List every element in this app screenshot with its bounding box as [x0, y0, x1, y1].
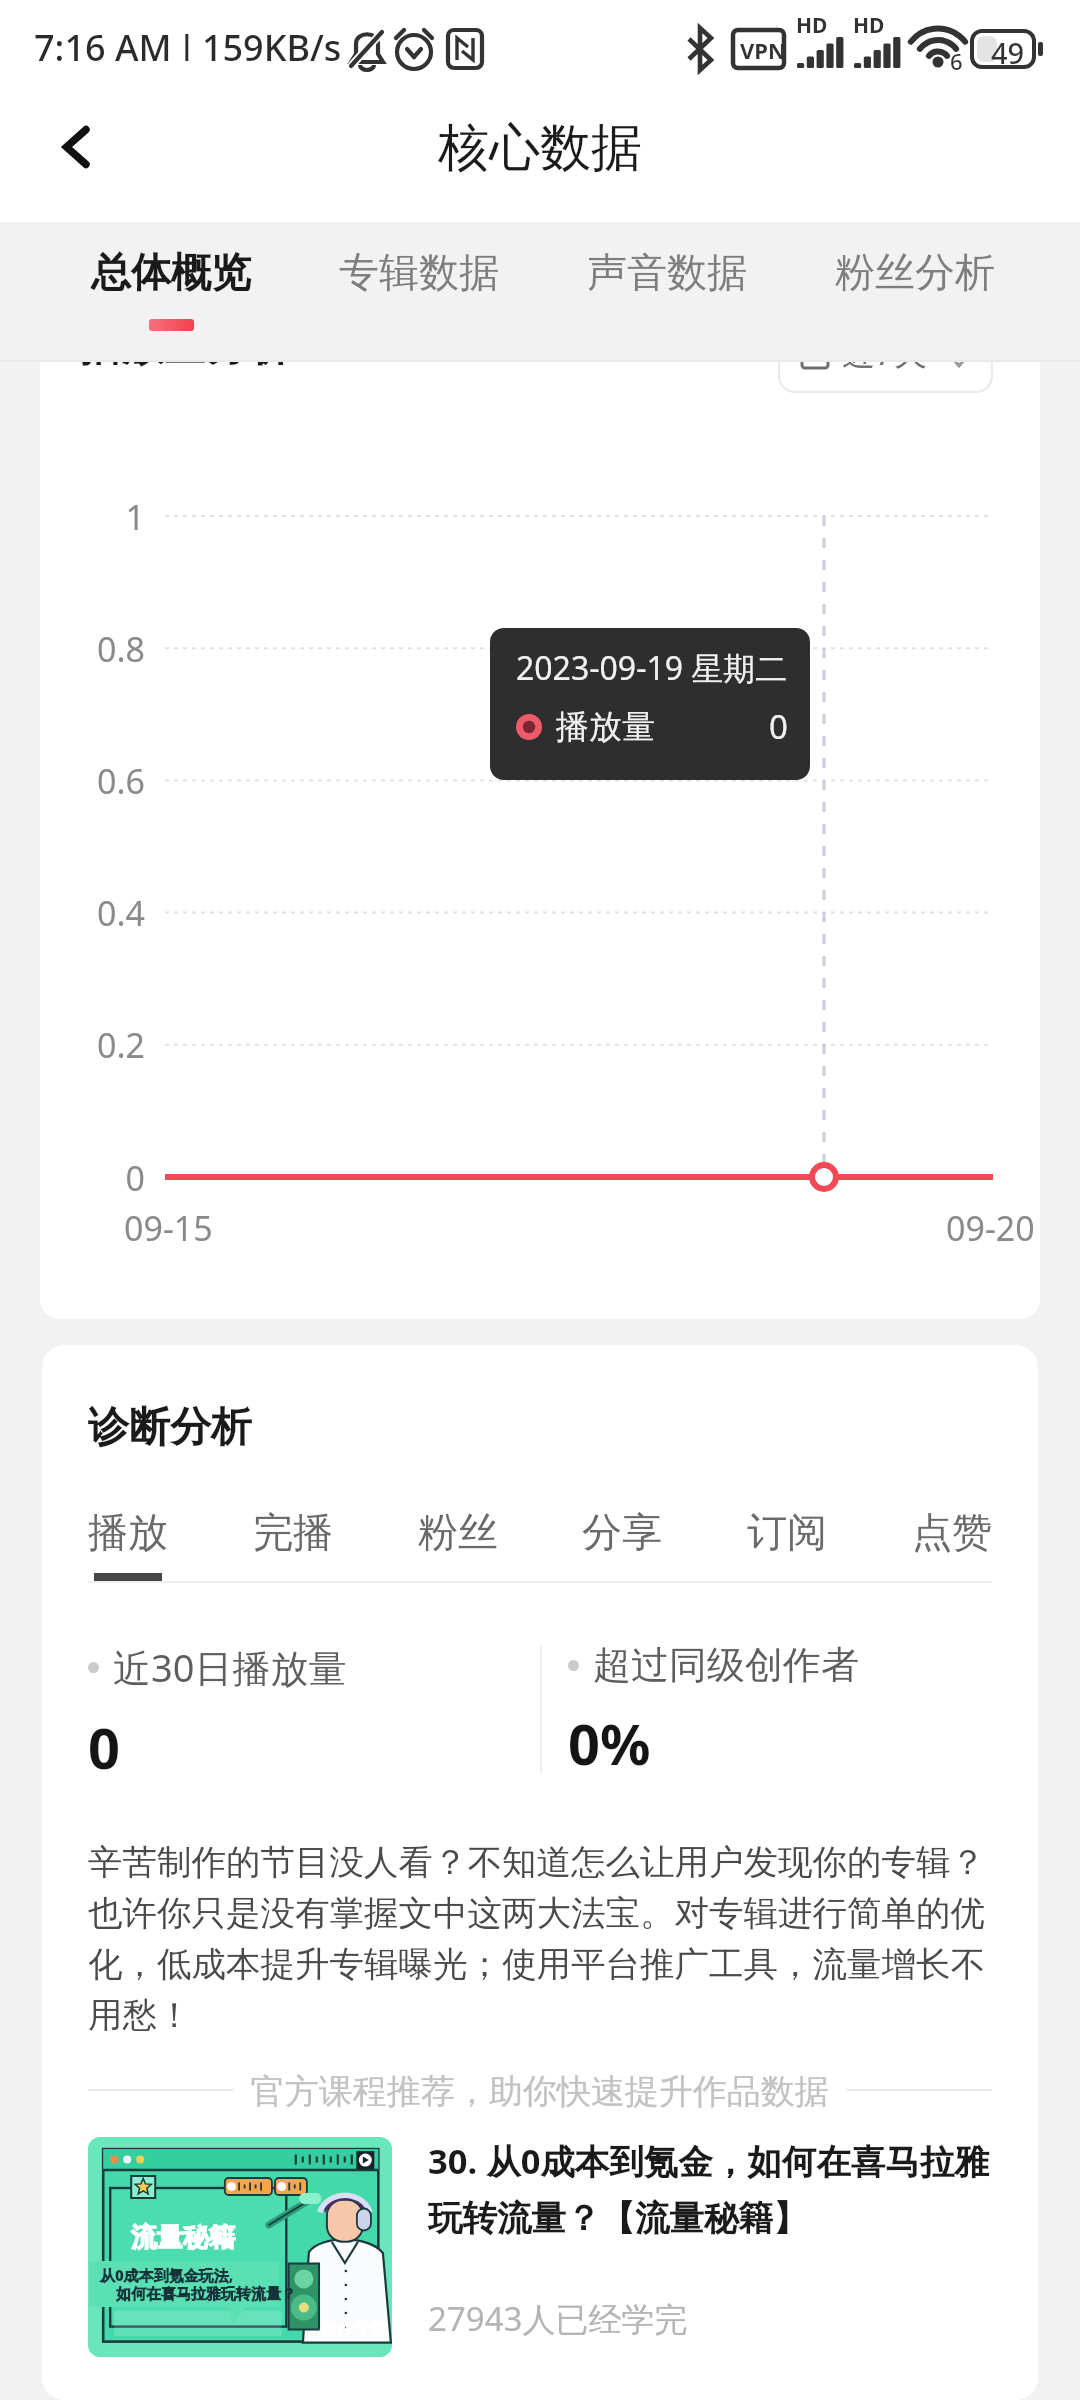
staticText: 订阅	[747, 1507, 827, 1557]
button[interactable]: 分享	[582, 1507, 662, 1581]
staticText: 0.6	[96, 758, 145, 804]
button[interactable]: 总体概览	[47, 222, 295, 360]
staticText: 诊断分析	[88, 1402, 252, 1454]
staticText: 粉丝分析	[835, 247, 995, 297]
staticText: 6	[950, 46, 963, 76]
staticText: 播放	[88, 1507, 168, 1557]
button[interactable]: 点赞	[912, 1507, 992, 1581]
staticText: 30. 从0成本到氪金，如何在喜马拉雅玩转流量？【流量秘籍】	[428, 2137, 992, 2240]
staticText: 2023-09-19 星期二	[516, 646, 788, 690]
staticText: HD	[796, 11, 828, 40]
button[interactable]: 声音数据	[543, 222, 791, 360]
staticText: HD	[853, 11, 885, 40]
staticText: 流量秘籍	[131, 2221, 235, 2254]
staticText: 创作学院	[320, 2319, 388, 2340]
staticText: 声音数据	[587, 247, 747, 297]
button[interactable]: Back	[20, 87, 140, 207]
staticText: 0%	[568, 1705, 651, 1781]
staticText: 1	[125, 494, 145, 540]
staticText: 0	[125, 1155, 145, 1201]
staticText: 27943人已经学完	[428, 2296, 688, 2341]
staticText: VPN	[740, 35, 786, 65]
button[interactable]: 专辑数据	[295, 222, 543, 360]
staticText: 播放量	[556, 706, 655, 748]
staticText: 超过同级创作者	[593, 1641, 859, 1689]
staticText: 从0成本到氪金玩法,	[100, 2265, 234, 2285]
staticText: 核心数据	[438, 116, 642, 180]
staticText: 近7天	[842, 362, 927, 375]
staticText: 0	[88, 1709, 121, 1785]
staticText: 49	[991, 33, 1025, 72]
button[interactable]: 流量秘籍	[88, 2137, 992, 2357]
staticText: 完播	[253, 1507, 333, 1557]
button[interactable]: 完播	[253, 1507, 333, 1581]
staticText: 09-20	[946, 1205, 1035, 1251]
button[interactable]: 订阅	[747, 1507, 827, 1581]
staticText: 粉丝	[418, 1507, 498, 1557]
staticText: 7:16 AM ǀ 159KB/s	[34, 23, 342, 72]
staticText: 09-15	[124, 1205, 213, 1251]
staticText: 0	[769, 704, 788, 749]
button[interactable]: 选择日期范围 近7天	[778, 362, 993, 393]
button[interactable]: 粉丝	[418, 1507, 498, 1581]
staticText: 0.8	[96, 626, 145, 672]
staticText: 0.4	[96, 890, 145, 936]
staticText: 官方课程推荐，助你快速提升作品数据	[233, 2067, 847, 2113]
staticText: 0.2	[96, 1022, 145, 1068]
staticText: 分享	[582, 1507, 662, 1557]
staticText: 近30日播放量	[113, 1641, 347, 1693]
button[interactable]: 播放	[88, 1507, 168, 1581]
staticText: 专辑数据	[339, 247, 499, 297]
button[interactable]: 粉丝分析	[791, 222, 1039, 360]
staticText: 播放量分析	[80, 362, 290, 373]
staticText: 总体概览	[91, 247, 251, 297]
staticText: 点赞	[912, 1507, 992, 1557]
staticText: 如何在喜马拉雅玩转流量？	[116, 2285, 296, 2304]
staticText: 辛苦制作的节目没人看？不知道怎么让用户发现你的专辑？也许你只是没有掌握文中这两大…	[88, 1841, 992, 2037]
